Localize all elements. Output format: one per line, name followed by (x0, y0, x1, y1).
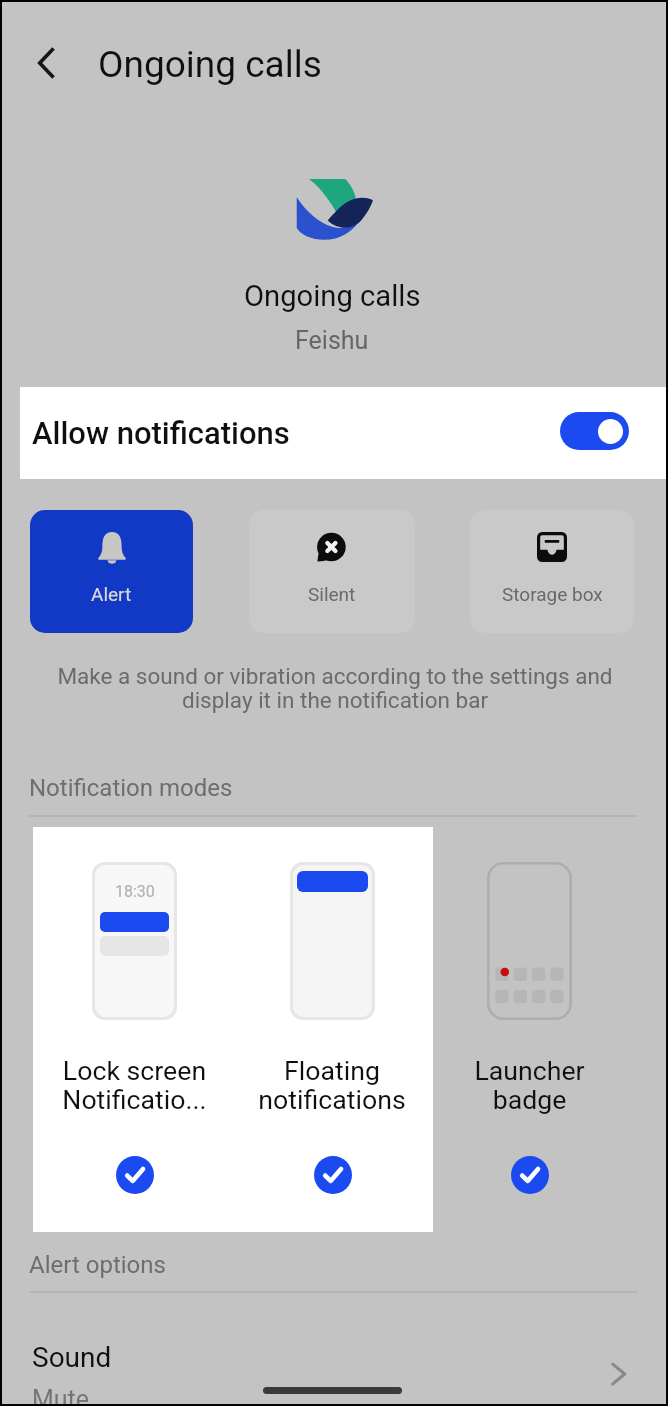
button[interactable]: Alert (30, 510, 193, 633)
staticText: Ongoing calls (98, 43, 322, 86)
staticText: Mute (32, 1385, 90, 1406)
button[interactable]: Storage box (470, 510, 634, 633)
button[interactable]: 18:30 (35, 827, 233, 1232)
staticText: Alert options (29, 1251, 166, 1279)
button[interactable]: Allow notifications (20, 387, 666, 479)
staticText: Storage box (502, 583, 603, 605)
staticText: Launcher badge (474, 1055, 585, 1115)
button[interactable]: Back (0, 30, 76, 96)
staticText: Lock screen Notificatio... (62, 1055, 207, 1115)
staticText: Make a sound or vibration according to t… (55, 663, 615, 714)
button[interactable]: Silent (249, 510, 415, 633)
staticText: 18:30 (115, 882, 155, 901)
staticText: Sound (32, 1341, 112, 1374)
staticText: Feishu (295, 326, 369, 355)
button[interactable]: Launcher badge (430, 827, 628, 1232)
button[interactable]: Floating notifications (233, 827, 431, 1232)
staticText: Allow notifications (32, 415, 290, 451)
staticText: Alert (91, 583, 132, 605)
staticText: Ongoing calls (244, 279, 421, 313)
button[interactable]: Sound (0, 1328, 668, 1406)
staticText: Floating notifications (258, 1055, 406, 1115)
staticText: Notification modes (29, 774, 233, 802)
staticText: Silent (308, 583, 356, 605)
